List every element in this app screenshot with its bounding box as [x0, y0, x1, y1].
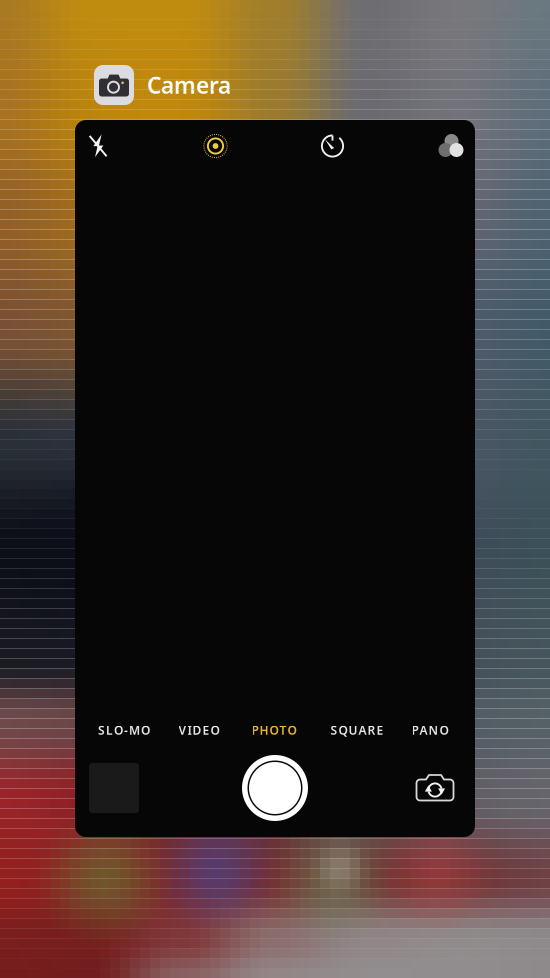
button[interactable]: P A N O — [411, 719, 448, 741]
staticText: P A N O — [411, 722, 448, 738]
staticText: S Q U A R E — [330, 722, 383, 738]
button[interactable]: Filters — [438, 133, 464, 159]
staticText: S L O - M O — [98, 722, 150, 738]
staticText: V I D E O — [178, 722, 219, 738]
button[interactable]: S L O - M O — [98, 719, 150, 741]
button[interactable]: P H O T O — [251, 719, 296, 741]
staticText: P H O T O — [251, 722, 296, 738]
button[interactable]: Flash off — [88, 133, 109, 158]
button[interactable]: Timer — [319, 133, 345, 159]
button[interactable]: V I D E O — [178, 719, 219, 741]
button[interactable]: Switch camera — [415, 772, 455, 804]
button[interactable]: Take photo — [241, 754, 309, 822]
button[interactable]: S Q U A R E — [330, 719, 383, 741]
staticText: Camera — [147, 70, 231, 100]
button[interactable]: Live Photo — [202, 133, 228, 159]
